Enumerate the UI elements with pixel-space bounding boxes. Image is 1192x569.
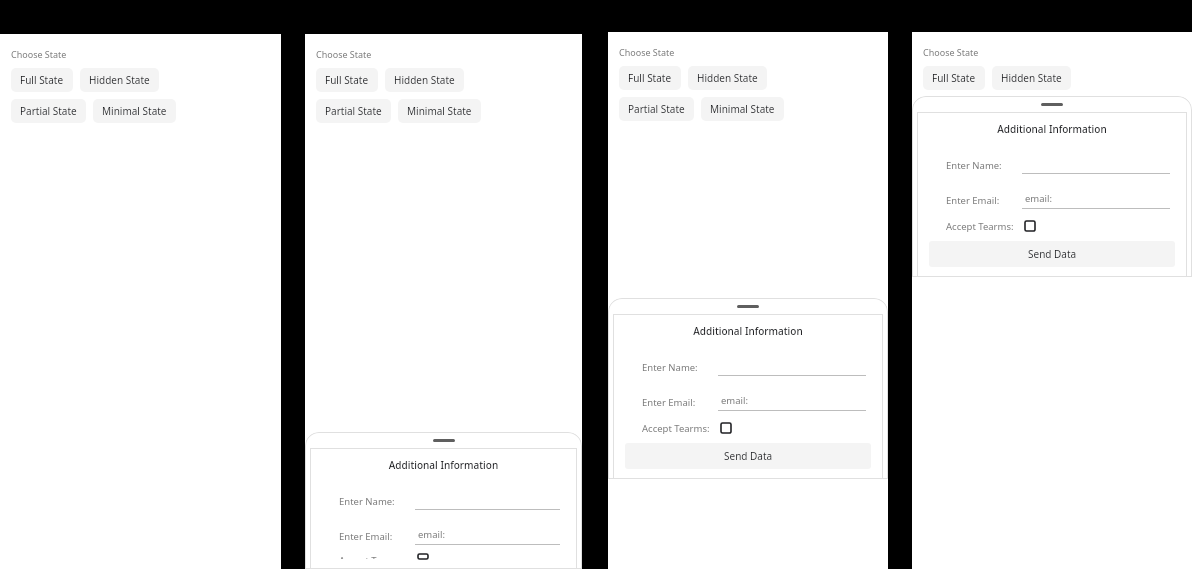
- staticText: Accept Tearms:: [339, 554, 415, 559]
- staticText: Minimal State: [710, 102, 775, 116]
- staticText: Enter Email:: [946, 194, 1022, 207]
- staticText: Hidden State: [1001, 71, 1062, 85]
- button[interactable]: Hidden State: [992, 66, 1071, 90]
- button[interactable]: Accept Terms checkbox: [1022, 218, 1038, 234]
- button[interactable]: Full State: [316, 68, 378, 92]
- staticText: Hidden State: [394, 73, 455, 87]
- button[interactable]: Accept Terms checkbox: [718, 420, 734, 436]
- staticText: Send Data: [1028, 247, 1077, 261]
- button[interactable]: Minimal State: [1005, 97, 1088, 121]
- staticText: email:: [1025, 192, 1053, 205]
- staticText: Accept Tearms:: [642, 422, 718, 435]
- staticText: Full State: [20, 73, 64, 87]
- button[interactable]: Send Data: [625, 443, 871, 469]
- staticText: Enter Email:: [642, 396, 718, 409]
- button[interactable]: Minimal State: [93, 99, 176, 123]
- staticText: Enter Name:: [946, 159, 1022, 172]
- button[interactable]: Drag handle: [433, 439, 455, 442]
- staticText: Choose State: [11, 48, 67, 60]
- staticText: Hidden State: [89, 73, 150, 87]
- staticText: Full State: [932, 71, 976, 85]
- button[interactable]: Partial State: [316, 99, 391, 123]
- staticText: Additional Information: [613, 324, 883, 338]
- button[interactable]: Full State: [923, 66, 985, 90]
- staticText: Enter Email:: [339, 530, 415, 543]
- button[interactable]: Minimal State: [701, 97, 784, 121]
- staticText: Choose State: [923, 46, 979, 58]
- button[interactable]: Partial State: [923, 97, 998, 121]
- staticText: Hidden State: [697, 71, 758, 85]
- staticText: Minimal State: [407, 104, 472, 118]
- staticText: Partial State: [628, 102, 685, 116]
- staticText: Partial State: [20, 104, 77, 118]
- staticText: Choose State: [619, 46, 675, 58]
- button[interactable]: Partial State: [11, 99, 86, 123]
- staticText: Accept Tearms:: [946, 220, 1022, 233]
- staticText: Full State: [628, 71, 672, 85]
- staticText: Enter Name:: [642, 361, 718, 374]
- staticText: Full State: [325, 73, 369, 87]
- button[interactable]: Send Data: [929, 241, 1175, 267]
- staticText: Choose State: [316, 48, 372, 60]
- staticText: Additional Information: [917, 122, 1187, 136]
- staticText: Additional Information: [310, 458, 577, 472]
- button[interactable]: Accept Terms checkbox: [415, 554, 431, 559]
- staticText: Partial State: [932, 102, 989, 116]
- button[interactable]: Full State: [619, 66, 681, 90]
- button[interactable]: Drag handle: [737, 305, 759, 308]
- staticText: Minimal State: [102, 104, 167, 118]
- button[interactable]: Hidden State: [385, 68, 464, 92]
- staticText: Enter Name:: [339, 495, 415, 508]
- button[interactable]: Drag handle: [1041, 103, 1063, 106]
- button[interactable]: Minimal State: [398, 99, 481, 123]
- button[interactable]: Full State: [11, 68, 73, 92]
- button[interactable]: Hidden State: [688, 66, 767, 90]
- staticText: Partial State: [325, 104, 382, 118]
- button[interactable]: Partial State: [619, 97, 694, 121]
- staticText: Send Data: [724, 449, 773, 463]
- button[interactable]: Hidden State: [80, 68, 159, 92]
- staticText: Minimal State: [1014, 102, 1079, 116]
- staticText: email:: [418, 528, 446, 541]
- staticText: email:: [721, 394, 749, 407]
